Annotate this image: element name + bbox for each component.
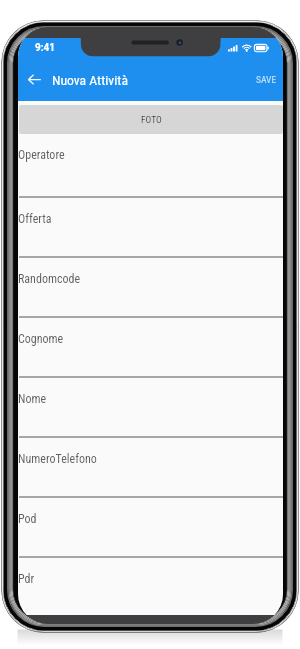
button[interactable]: Randomcode (18, 258, 283, 318)
button[interactable]: SAVE (251, 66, 282, 93)
staticText: Nome (18, 392, 47, 406)
button[interactable]: Back (18, 63, 51, 96)
staticText: Pod (18, 512, 37, 526)
button[interactable]: Pod (18, 498, 283, 558)
staticText: Randomcode (18, 272, 81, 286)
staticText: Pdr (18, 572, 35, 586)
button[interactable]: Offerta (18, 198, 283, 258)
button[interactable]: Cognome (18, 318, 283, 378)
staticText: Operatore (18, 148, 65, 162)
staticText: Nuova Attività (52, 72, 128, 88)
staticText: 9:41 (35, 42, 56, 54)
button[interactable]: Operatore (18, 134, 283, 198)
button[interactable]: NumeroTelefono (18, 438, 283, 498)
button[interactable]: FOTO (19, 105, 283, 134)
staticText: SAVE (256, 74, 277, 85)
staticText: Offerta (18, 212, 52, 226)
button[interactable]: Pdr (18, 558, 283, 615)
staticText: Cognome (18, 332, 64, 346)
staticText: FOTO (141, 114, 162, 125)
staticText: NumeroTelefono (18, 452, 97, 466)
button[interactable]: Nome (18, 378, 283, 438)
